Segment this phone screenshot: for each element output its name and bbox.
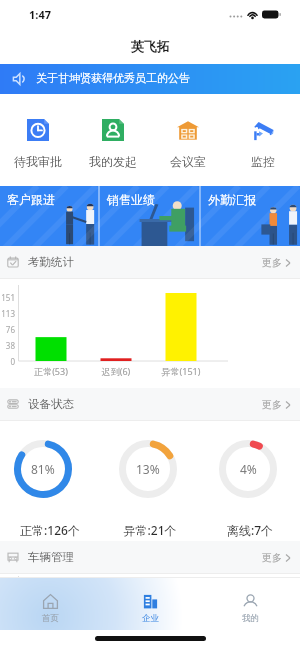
staticText: 更多: [262, 256, 282, 269]
button[interactable]: 首页: [0, 578, 100, 630]
staticText: 76: [0, 324, 15, 335]
staticText: 销售业绩: [107, 192, 155, 207]
button[interactable]: 待我审批: [0, 94, 75, 174]
staticText: 首页: [42, 613, 59, 624]
staticText: 考勤统计: [28, 255, 74, 269]
staticText: 英飞拓: [131, 38, 170, 54]
staticText: 关于甘坤贤获得优秀员工的公告: [36, 71, 190, 85]
staticText: 38: [0, 340, 15, 351]
button[interactable]: 4%: [219, 440, 277, 498]
button[interactable]: 会议室: [150, 94, 225, 174]
button[interactable]: 企业: [100, 578, 200, 630]
staticText: 我的: [242, 613, 259, 624]
staticText: 13%: [136, 461, 160, 477]
staticText: 客户跟进: [7, 192, 55, 207]
staticText: 待我审批: [14, 154, 62, 169]
staticText: 车辆管理: [28, 550, 74, 564]
staticText: 4%: [240, 461, 257, 477]
staticText: 外勤汇报: [208, 192, 256, 207]
staticText: 我的发起: [89, 154, 137, 169]
staticText: 81%: [31, 461, 55, 477]
staticText: 异常(151): [151, 365, 211, 377]
button[interactable]: 我的: [200, 578, 300, 630]
staticText: 更多: [262, 398, 282, 411]
button[interactable]: 客户跟进: [0, 186, 98, 246]
staticText: 正常(53): [21, 365, 81, 377]
button[interactable]: 车辆管理: [0, 541, 300, 573]
staticText: 监控: [251, 154, 275, 169]
staticText: 企业: [142, 613, 159, 624]
button[interactable]: 关于甘坤贤获得优秀员工的公告: [0, 64, 300, 94]
button[interactable]: 外勤汇报: [201, 186, 300, 246]
button[interactable]: 13%: [119, 440, 177, 498]
button[interactable]: 销售业绩: [100, 186, 199, 246]
staticText: 1:47: [29, 7, 51, 22]
button[interactable]: 设备状态: [0, 388, 300, 420]
staticText: 离线:7个: [200, 522, 300, 538]
button[interactable]: 考勤统计: [0, 246, 300, 278]
staticText: 迟到(6): [86, 365, 146, 377]
staticText: 更多: [262, 551, 282, 564]
staticText: 正常:126个: [0, 522, 100, 538]
button[interactable]: 81%: [14, 440, 72, 498]
staticText: 113: [0, 308, 15, 319]
button[interactable]: 我的发起: [75, 94, 150, 174]
staticText: 异常:21个: [100, 522, 200, 538]
staticText: 设备状态: [28, 397, 74, 411]
staticText: 0: [0, 356, 15, 367]
button[interactable]: 监控: [225, 94, 300, 174]
staticText: 151: [0, 292, 15, 303]
staticText: 会议室: [170, 154, 206, 169]
